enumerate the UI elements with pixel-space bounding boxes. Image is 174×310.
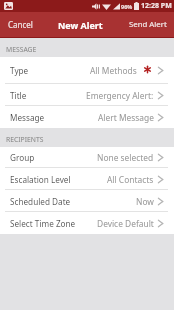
staticText: All Methods bbox=[90, 65, 137, 76]
button[interactable]: Scheduled Date bbox=[0, 190, 174, 212]
staticText: Title bbox=[10, 90, 27, 101]
staticText: Now bbox=[136, 196, 154, 207]
staticText: Group bbox=[10, 152, 35, 163]
button[interactable]: Cancel bbox=[4, 15, 37, 34]
staticText: MESSAGE bbox=[6, 45, 37, 54]
staticText: Emergency Alert: bbox=[86, 90, 154, 101]
staticText: 12:28 PM bbox=[141, 1, 172, 11]
button[interactable]: Title bbox=[0, 84, 174, 106]
staticText: All Contacts bbox=[107, 174, 154, 185]
button[interactable]: Type bbox=[0, 57, 174, 84]
button[interactable]: Select Time Zone bbox=[0, 212, 174, 234]
staticText: Message bbox=[10, 112, 45, 123]
button[interactable]: Send Alert bbox=[125, 15, 171, 34]
staticText: RECIPIENTS bbox=[6, 135, 44, 144]
staticText: Scheduled Date bbox=[10, 196, 71, 207]
staticText: Cancel bbox=[8, 19, 33, 30]
staticText: 96% bbox=[121, 3, 133, 10]
staticText: Device Default bbox=[97, 218, 154, 229]
staticText: Select Time Zone bbox=[10, 218, 76, 229]
staticText: Send Alert bbox=[129, 19, 167, 30]
staticText: New Alert bbox=[58, 19, 103, 31]
button[interactable]: Message bbox=[0, 106, 174, 128]
staticText: None selected bbox=[97, 152, 154, 163]
staticText: Type bbox=[10, 65, 29, 76]
button[interactable]: Escalation Level bbox=[0, 168, 174, 190]
staticText: Escalation Level bbox=[10, 174, 71, 185]
button[interactable]: Group bbox=[0, 147, 174, 168]
staticText: Alert Message bbox=[98, 112, 154, 123]
